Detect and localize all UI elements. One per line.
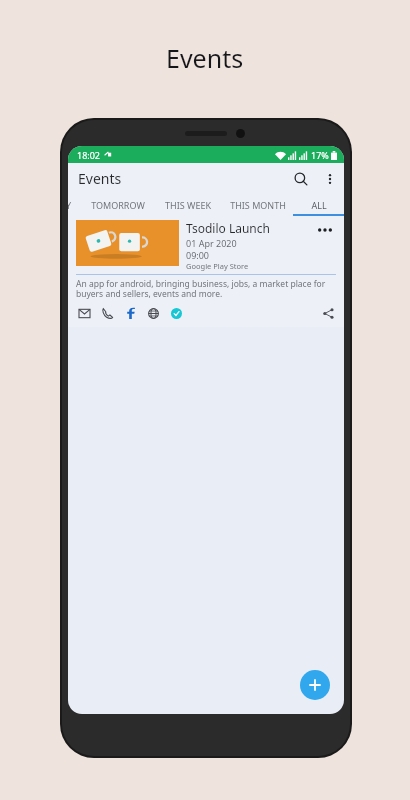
button[interactable]: More options xyxy=(316,165,344,193)
button[interactable]: Event options xyxy=(314,220,336,240)
button[interactable]: Add event xyxy=(300,670,330,700)
staticText: 18:02 xyxy=(77,149,101,161)
staticText: ALL xyxy=(311,199,327,211)
staticText: Events xyxy=(78,169,122,188)
staticText: Google Play Store xyxy=(186,261,249,271)
staticText: 09:00 xyxy=(186,249,210,261)
button[interactable]: Facebook xyxy=(122,305,138,321)
button[interactable]: Share xyxy=(320,305,336,321)
staticText: 17% xyxy=(311,149,329,161)
staticText: Events xyxy=(166,41,244,75)
staticText: THIS MONTH xyxy=(230,199,286,211)
button[interactable]: THIS MONTH xyxy=(223,194,293,216)
button[interactable]: ALL xyxy=(293,194,344,216)
staticText: 01 Apr 2020 xyxy=(186,237,237,249)
button[interactable]: Tsodilo Launch xyxy=(68,216,344,327)
button[interactable]: Verified xyxy=(168,305,184,321)
staticText: Y xyxy=(68,199,72,211)
staticText: THIS WEEK xyxy=(165,199,211,211)
button[interactable]: TOMORROW xyxy=(82,194,153,216)
staticText: Tsodilo Launch xyxy=(186,220,270,236)
staticText: An app for android, bringing business, j… xyxy=(76,278,336,299)
button[interactable]: Call xyxy=(99,305,115,321)
button[interactable]: THIS WEEK xyxy=(153,194,223,216)
button[interactable]: Search xyxy=(286,164,316,194)
button[interactable]: Website xyxy=(145,305,161,321)
button[interactable]: Email xyxy=(76,305,92,321)
staticText: TOMORROW xyxy=(91,199,145,211)
